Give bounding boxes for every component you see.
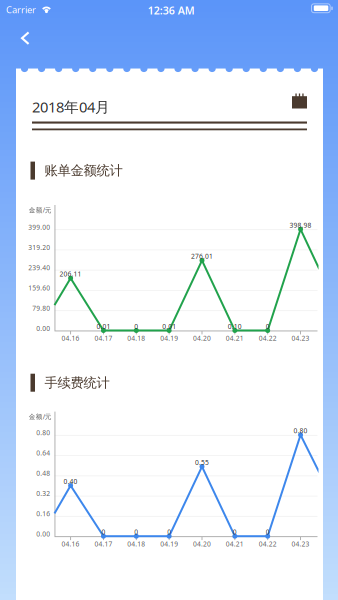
button[interactable]: Choose month <box>284 85 315 116</box>
staticText: Carrier <box>6 3 36 16</box>
staticText: 0 <box>266 528 270 536</box>
staticText: 0 <box>134 322 138 331</box>
staticText: 2018年04月 <box>32 97 110 116</box>
staticText: 79.80 <box>32 304 50 312</box>
staticText: 398.98 <box>290 221 312 230</box>
staticText: 金额/元 <box>29 412 52 421</box>
staticText: 0.10 <box>228 322 242 331</box>
staticText: 0.48 <box>36 469 50 478</box>
staticText: 0 <box>266 322 270 331</box>
staticText: 0.40 <box>64 477 78 486</box>
staticText: 0.55 <box>195 458 209 467</box>
staticText: 手续费统计 <box>44 374 109 391</box>
staticText: 12:36 AM <box>148 3 195 17</box>
staticText: 04.21 <box>226 334 244 343</box>
staticText: 04.17 <box>94 334 112 343</box>
staticText: 04.22 <box>259 539 277 548</box>
staticText: 399.00 <box>28 223 50 232</box>
staticText: 0.80 <box>36 428 50 437</box>
staticText: 0.01 <box>96 322 110 331</box>
staticText: 04.16 <box>62 334 80 343</box>
staticText: 276.01 <box>191 252 213 261</box>
staticText: 账单金额统计 <box>44 162 122 179</box>
staticText: 04.20 <box>193 539 211 548</box>
staticText: 04.18 <box>127 539 145 548</box>
staticText: 0.32 <box>36 489 50 498</box>
staticText: 04.17 <box>94 539 112 548</box>
staticText: 0 <box>233 528 237 536</box>
staticText: 04.23 <box>292 334 310 343</box>
staticText: 04.19 <box>160 539 178 548</box>
staticText: 0.00 <box>36 530 50 538</box>
staticText: 04.19 <box>160 334 178 343</box>
staticText: 04.20 <box>193 334 211 343</box>
staticText: 0.16 <box>36 509 50 518</box>
staticText: 04.16 <box>62 539 80 548</box>
staticText: 0.01 <box>162 322 176 331</box>
staticText: 04.22 <box>259 334 277 343</box>
staticText: 0 <box>134 528 138 536</box>
staticText: 04.23 <box>292 539 310 548</box>
staticText: 金额/元 <box>29 206 52 214</box>
staticText: 159.60 <box>28 283 50 292</box>
staticText: 206.11 <box>60 270 82 278</box>
staticText: 0.80 <box>294 426 308 435</box>
staticText: 319.20 <box>28 243 50 252</box>
staticText: 0 <box>101 528 105 536</box>
staticText: 0.00 <box>36 324 50 333</box>
staticText: 04.18 <box>127 334 145 343</box>
staticText: 0.64 <box>36 449 50 457</box>
staticText: 0 <box>167 528 171 536</box>
staticText: 04.21 <box>226 539 244 548</box>
button[interactable]: Back <box>0 19 46 55</box>
staticText: 239.40 <box>28 263 50 272</box>
